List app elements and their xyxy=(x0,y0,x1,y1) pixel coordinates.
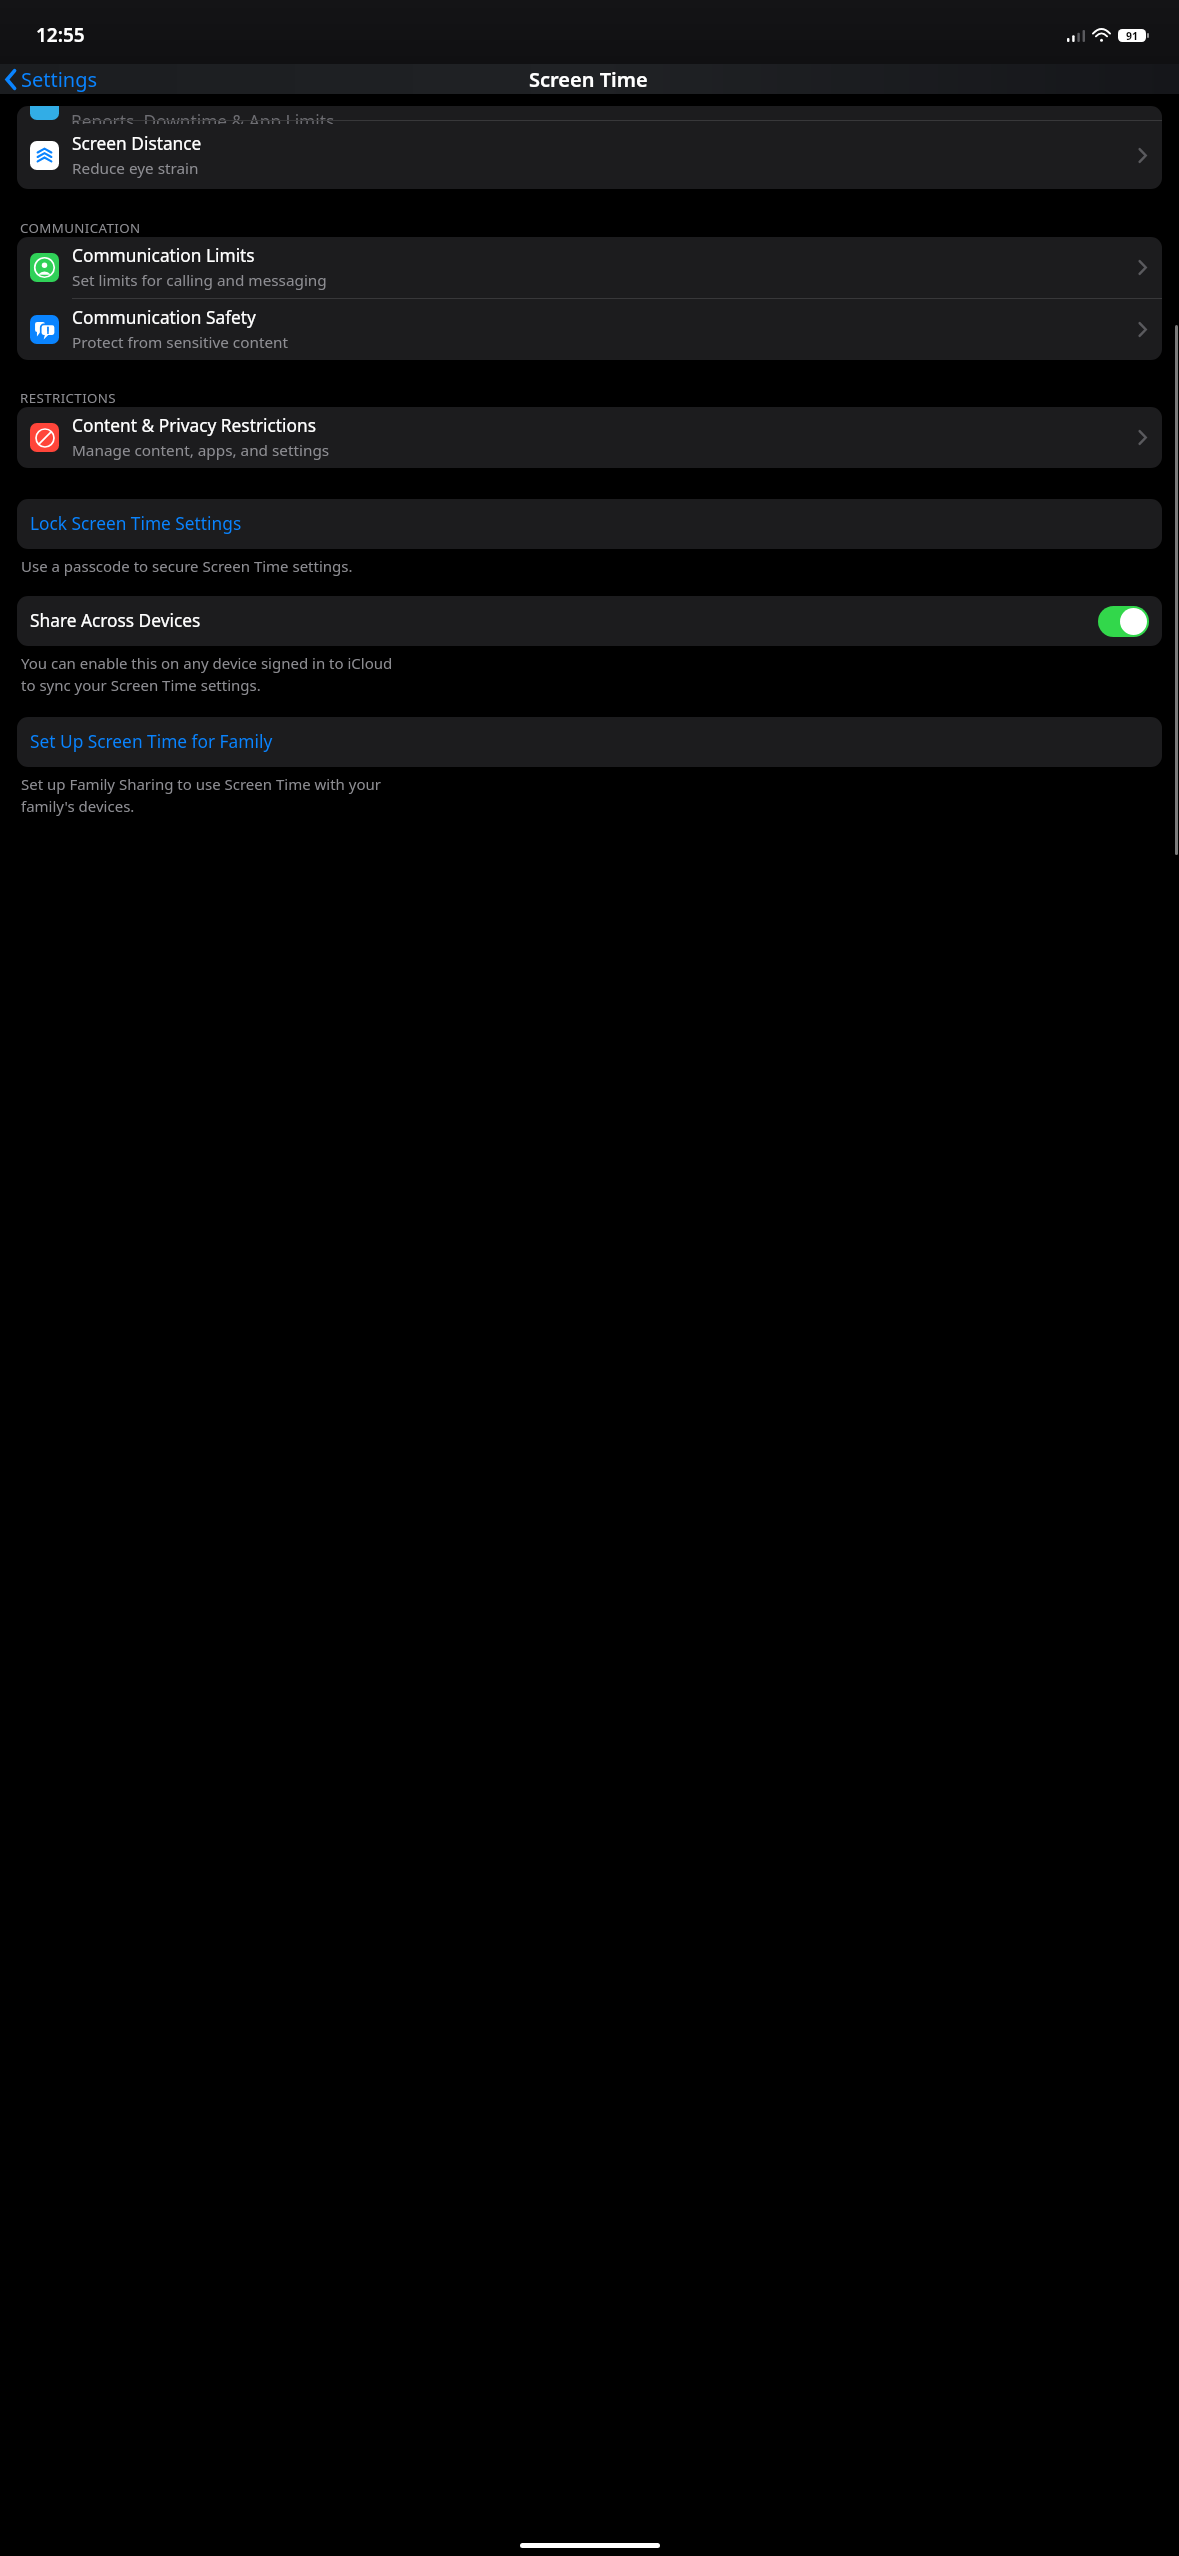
staticText: COMMUNICATION xyxy=(20,219,141,237)
staticText: Use a passcode to secure Screen Time set… xyxy=(21,556,353,576)
other: Content & Privacy Restrictions xyxy=(30,423,59,452)
staticText: Manage content, apps, and settings xyxy=(72,440,330,461)
staticText: Set up Family Sharing to use Screen Time… xyxy=(21,774,381,794)
button[interactable]: Set Up Screen Time for Family xyxy=(17,717,1162,767)
staticText: Share Across Devices xyxy=(30,609,1098,633)
staticText: Lock Screen Time Settings xyxy=(30,512,242,536)
button[interactable]: Communication Limits xyxy=(17,237,1162,298)
staticText: Screen Time xyxy=(529,66,648,93)
staticText: Communication Limits xyxy=(72,244,255,268)
button[interactable]: Communication Safety xyxy=(17,299,1162,360)
staticText: Screen Distance xyxy=(72,132,202,156)
other: Communication Limits xyxy=(30,253,59,282)
staticText: RESTRICTIONS xyxy=(20,389,117,407)
other: Communication Safety xyxy=(30,315,59,344)
staticText: 91 xyxy=(1126,29,1139,42)
staticText: Communication Safety xyxy=(72,306,256,330)
staticText: Set limits for calling and messaging xyxy=(72,270,327,291)
staticText: Content & Privacy Restrictions xyxy=(72,414,316,438)
button[interactable]: Screen Distance xyxy=(17,121,1162,189)
button[interactable]: Share Across Devices xyxy=(17,596,1162,646)
staticText: Reduce eye strain xyxy=(72,158,199,179)
staticText: Settings xyxy=(21,66,98,92)
staticText: to sync your Screen Time settings. xyxy=(21,675,261,695)
staticText: Reports, Downtime & App Limits xyxy=(71,110,335,124)
button[interactable]: Share Across Devices toggle xyxy=(1098,606,1149,637)
staticText: You can enable this on any device signed… xyxy=(21,653,393,673)
button[interactable]: Lock Screen Time Settings xyxy=(17,499,1162,549)
button[interactable]: Content & Privacy Restrictions xyxy=(17,407,1162,468)
staticText: family's devices. xyxy=(21,796,135,816)
staticText: Set Up Screen Time for Family xyxy=(30,730,273,754)
button[interactable]: Settings xyxy=(0,64,106,94)
staticText: Protect from sensitive content xyxy=(72,332,289,353)
other: Screen Distance xyxy=(30,141,59,170)
staticText: 12:55 xyxy=(36,22,85,48)
